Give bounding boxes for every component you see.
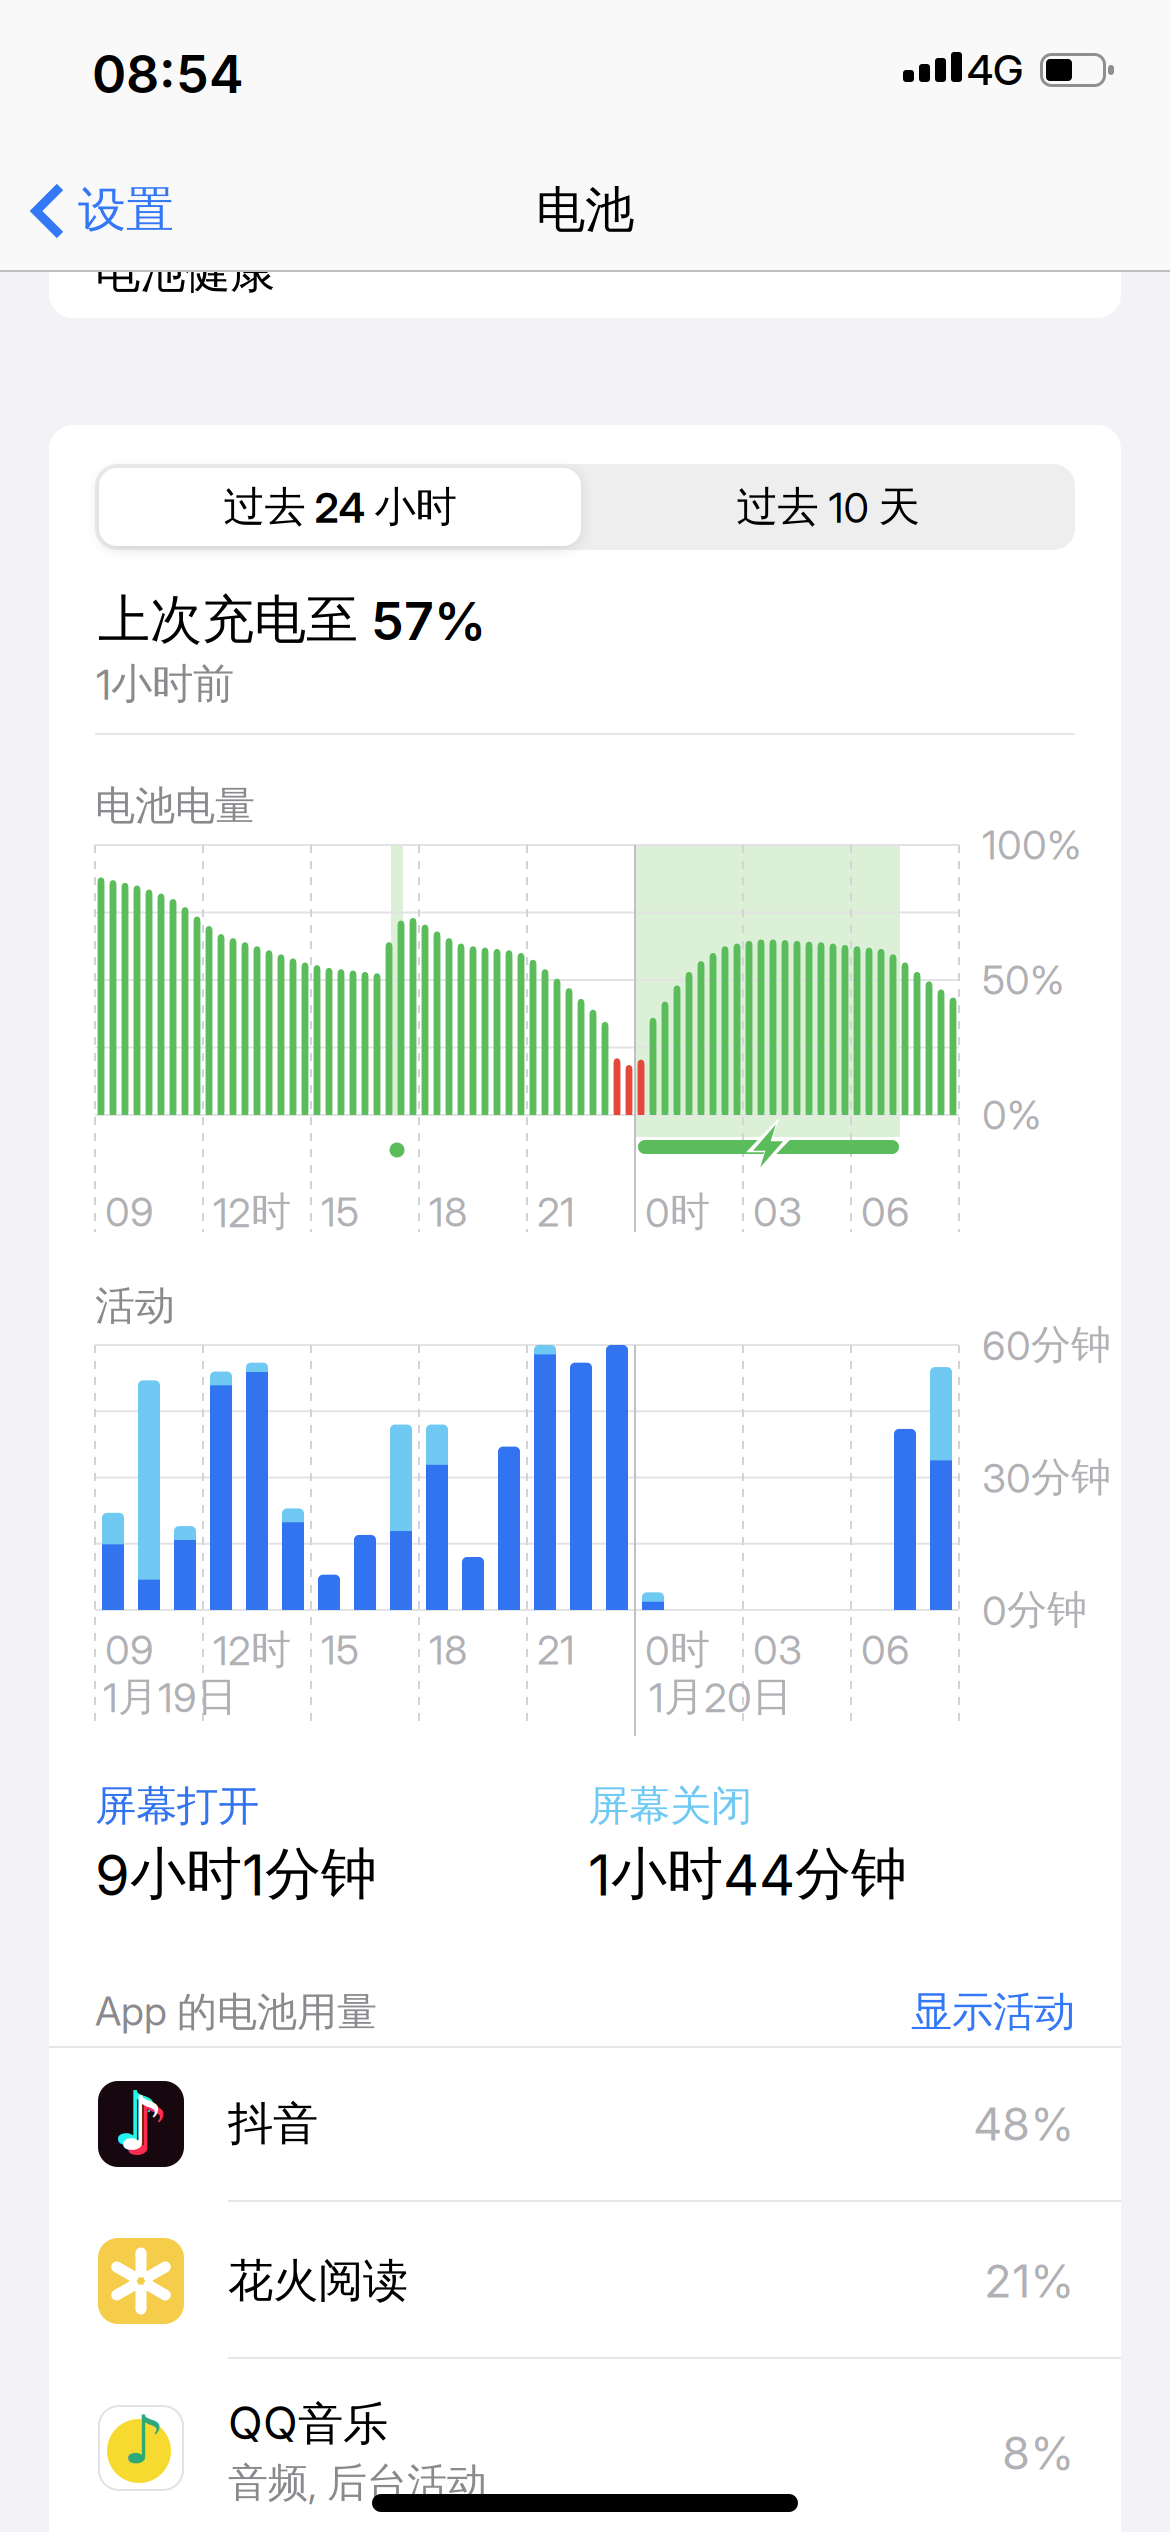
staticText: 18 [429, 1626, 467, 1674]
staticText: 0时 [645, 1187, 710, 1236]
staticText: ♪ [112, 2077, 160, 2161]
staticText: 15 [321, 1626, 359, 1674]
staticText: ♪ [122, 2087, 170, 2171]
staticText: 抖音 [228, 2096, 318, 2152]
staticText: ♪ [122, 2402, 165, 2478]
staticText: 03 [753, 1188, 802, 1236]
staticText: App 的电池用量 [95, 1987, 377, 2037]
staticText: 屏幕关闭 [588, 1781, 752, 1831]
staticText: 03 [753, 1626, 802, 1674]
staticText: 21 [537, 1188, 575, 1236]
staticText: 1小时44分钟 [588, 1840, 907, 1908]
staticText: 设置 [78, 180, 174, 239]
staticText: 100% [982, 821, 1081, 869]
staticText: 09 [105, 1188, 154, 1236]
staticText: 电池 [536, 180, 634, 240]
staticText: 21 [537, 1626, 575, 1674]
staticText: 显示活动 [911, 1987, 1075, 2037]
staticText: 12时 [213, 1187, 291, 1236]
staticText: 30分钟 [982, 1453, 1111, 1502]
staticText: 21% [984, 2254, 1075, 2308]
staticText: ♪ [117, 2082, 165, 2166]
staticText: 08:54 [92, 43, 244, 105]
staticText: 花火阅读 [228, 2253, 408, 2309]
staticText: 活动 [95, 1281, 175, 1330]
staticText: 06 [861, 1626, 910, 1674]
staticText: 9小时1分钟 [95, 1840, 377, 1908]
staticText: 0% [982, 1091, 1041, 1139]
staticText: 音频, 后台活动 [228, 2458, 487, 2507]
staticText: 1小时前 [96, 659, 234, 709]
staticText: 12时 [213, 1625, 291, 1674]
staticText: QQ音乐 [228, 2396, 388, 2452]
staticText: 过去 10 天 [736, 482, 919, 532]
staticText: 过去 24 小时 [223, 482, 456, 532]
staticText: 1月20日 [649, 1672, 792, 1721]
staticText: 0时 [645, 1625, 710, 1674]
staticText: 电池健康 [95, 244, 275, 300]
staticText: 06 [861, 1188, 910, 1236]
staticText: 电池电量 [95, 781, 255, 830]
staticText: 0分钟 [982, 1585, 1087, 1634]
staticText: 4G [967, 46, 1023, 94]
staticText: 18 [429, 1188, 467, 1236]
staticText: 60分钟 [982, 1320, 1111, 1369]
staticText: 15 [321, 1188, 359, 1236]
staticText: 屏幕打开 [95, 1781, 259, 1831]
staticText: 1月19日 [103, 1672, 237, 1721]
staticText: 09 [105, 1626, 154, 1674]
staticText: 8% [1002, 2426, 1075, 2480]
staticText: 50% [982, 956, 1064, 1004]
staticText: 上次充电至 57% [98, 588, 486, 652]
staticText: 48% [973, 2097, 1075, 2151]
